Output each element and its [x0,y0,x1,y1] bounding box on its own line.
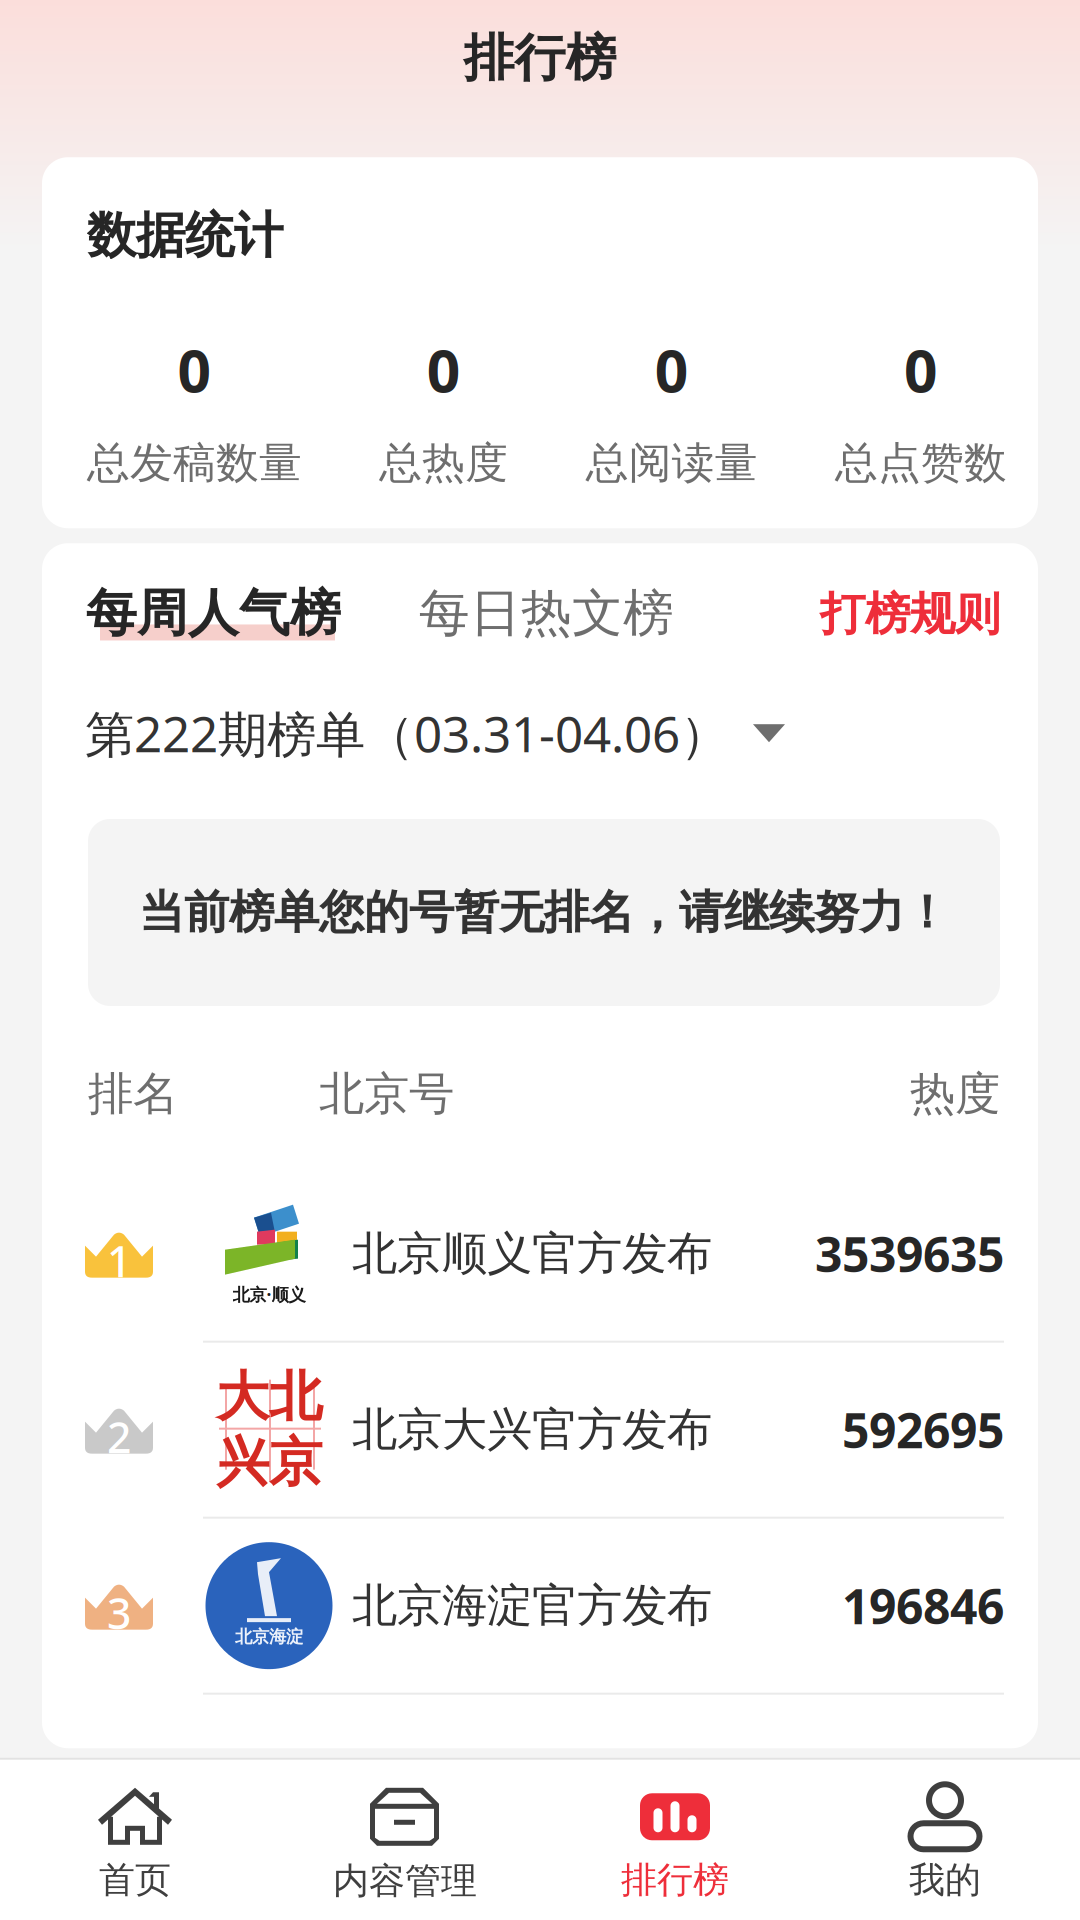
staticText: 北京海淀官方发布 [352,1578,712,1633]
staticText: 3539635 [815,1222,1004,1285]
staticText: 北京海淀 [235,1626,303,1647]
button[interactable]: 2 [42,1343,1038,1519]
staticText: 196846 [842,1574,1004,1637]
staticText: 当前榜单您的号暂无排名，请继续努力！ [139,885,949,940]
staticText: 热度 [910,1066,1000,1122]
staticText: 592695 [842,1398,1004,1461]
staticText: 北京·顺义 [232,1283,305,1306]
staticText: 京 [269,1430,322,1495]
staticText: 每周人气榜 [86,582,341,644]
button[interactable]: 3 [42,1519,1038,1695]
staticText: 兴 [216,1430,269,1495]
staticText: 0 [655,331,689,409]
staticText: 数据统计 [87,205,283,266]
staticText: 大 [216,1364,269,1430]
button[interactable]: 1 [42,1167,1038,1343]
button[interactable]: 排行榜 [540,1761,810,1919]
staticText: 总点赞数 [835,437,1007,489]
staticText: 每日热文榜 [419,582,674,644]
button[interactable]: 我的 [810,1761,1080,1919]
button[interactable]: 打榜规则 [820,582,1000,642]
staticText: 北京号 [319,1066,454,1122]
button[interactable]: 内容管理 [270,1760,540,1920]
staticText: 排名 [88,1066,178,1122]
staticText: 首页 [99,1858,171,1902]
staticText: 1 [107,1232,131,1289]
staticText: 0 [427,331,461,409]
staticText: 我的 [909,1858,981,1902]
staticText: 排行榜 [621,1858,729,1902]
staticText: 北京顺义官方发布 [352,1226,712,1281]
staticText: 0 [904,331,938,409]
button[interactable]: 每日热文榜 [341,582,674,644]
staticText: 总发稿数量 [87,437,302,489]
button[interactable]: 每周人气榜 [86,582,341,644]
staticText: 0 [177,331,211,409]
staticText: 总热度 [379,437,508,489]
staticText: 3 [107,1584,131,1641]
staticText: 2 [107,1408,131,1465]
staticText: 总阅读量 [586,437,758,489]
button[interactable]: 第222期榜单（03.31-04.06） [42,644,1038,766]
staticText: 北 [269,1364,322,1430]
staticText: 排行榜 [463,27,616,89]
staticText: 第222期榜单（03.31-04.06） [85,700,729,766]
button[interactable]: 首页 [0,1761,270,1919]
staticText: 打榜规则 [820,586,1000,642]
staticText: 北京大兴官方发布 [352,1402,712,1457]
staticText: 内容管理 [333,1859,477,1903]
